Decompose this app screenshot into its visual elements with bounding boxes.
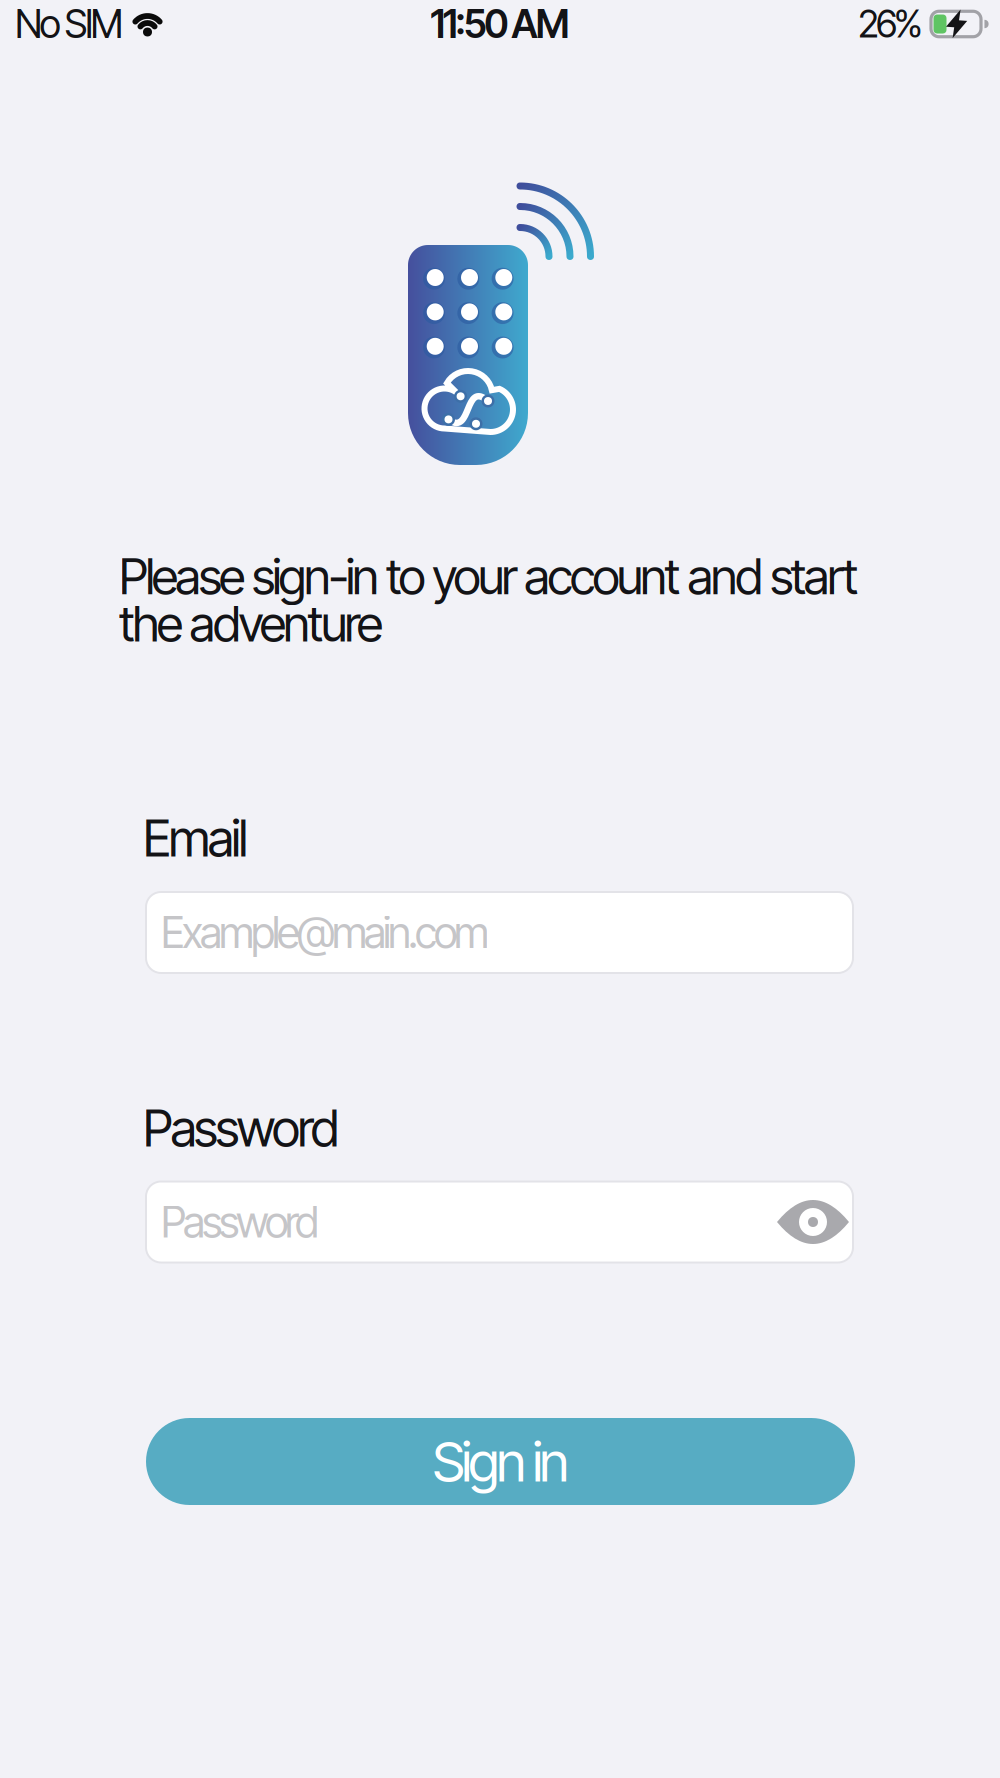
staticText: Please sign-in to your account and start xyxy=(119,547,859,605)
staticText: Example@main.com xyxy=(161,907,489,958)
staticText: Sign in xyxy=(432,1429,568,1494)
staticText: Password xyxy=(161,1197,319,1247)
staticText: No SIM xyxy=(15,1,123,47)
staticText: Email xyxy=(143,808,249,868)
staticText: the adventure xyxy=(119,594,383,653)
button[interactable]: Sign in xyxy=(146,1418,855,1505)
staticText: Password xyxy=(143,1098,339,1158)
staticText: 26% xyxy=(858,2,923,46)
staticText: 11:50 AM xyxy=(430,1,570,47)
button[interactable]: Show password xyxy=(775,1192,851,1252)
